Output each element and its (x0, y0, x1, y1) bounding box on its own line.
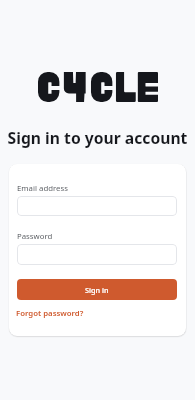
staticText: Sign in (85, 285, 109, 295)
staticText: Sign in to your account (0, 127, 195, 148)
button[interactable]: Forgot password? (16, 308, 84, 319)
button[interactable] (17, 244, 177, 265)
button[interactable] (17, 196, 177, 216)
staticText: Forgot password? (16, 308, 84, 319)
button[interactable]: Sign in (17, 279, 177, 300)
staticText: Email address (17, 183, 68, 194)
staticText: Password (17, 231, 53, 242)
